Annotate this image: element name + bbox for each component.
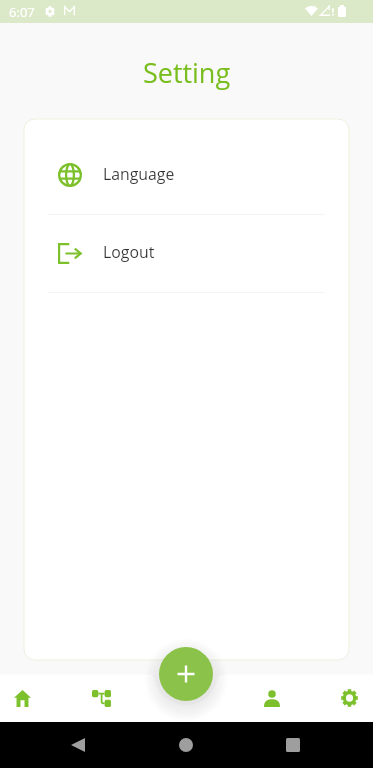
button[interactable]: Language bbox=[24, 136, 349, 214]
button[interactable]: Profile bbox=[250, 676, 294, 721]
button[interactable]: Add bbox=[159, 647, 213, 701]
button[interactable]: Settings bbox=[327, 675, 372, 721]
button[interactable]: Logout bbox=[24, 214, 349, 292]
button[interactable]: Network bbox=[78, 676, 125, 721]
staticText: 6:07 bbox=[9, 3, 35, 21]
staticText: Language bbox=[103, 163, 175, 185]
staticText: Logout bbox=[103, 241, 155, 263]
button[interactable]: Home bbox=[0, 676, 45, 721]
staticText: Setting bbox=[143, 54, 231, 91]
